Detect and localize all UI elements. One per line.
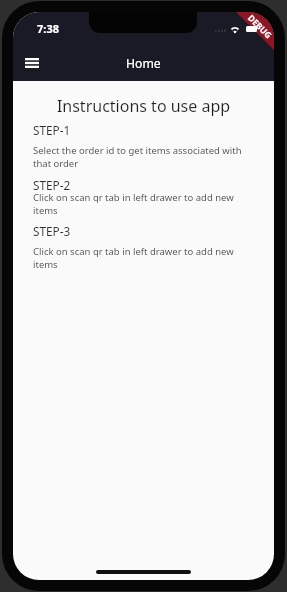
staticText: Select the order id to get items associa… (33, 144, 247, 170)
staticText: Instructions to use app (13, 95, 274, 117)
staticText: 7:38 (37, 21, 59, 36)
staticText: DEBUG (245, 12, 274, 42)
staticText: Click on scan qr tab in left drawer to a… (33, 245, 247, 271)
staticText: STEP-3 (33, 223, 71, 239)
staticText: STEP-2 (33, 177, 71, 193)
staticText: STEP-1 (33, 122, 71, 138)
staticText: Click on scan qr tab in left drawer to a… (33, 191, 247, 217)
button[interactable]: Open navigation drawer (19, 50, 45, 76)
staticText: Home (126, 55, 161, 72)
